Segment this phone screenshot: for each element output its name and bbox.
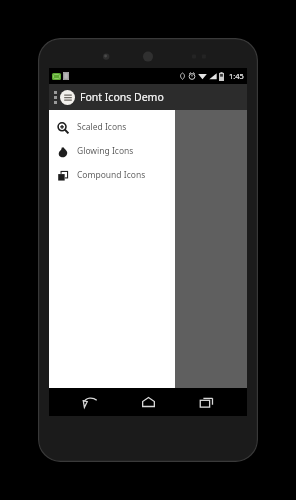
staticText: Compound Icons [77, 169, 146, 181]
staticText: 1:45 [229, 71, 244, 81]
staticText: Glowing Icons [77, 145, 134, 157]
button[interactable]: Recent apps [189, 388, 223, 416]
staticText: Scaled Icons [77, 121, 127, 133]
button[interactable]: Compound Icons [49, 163, 175, 187]
button[interactable]: Glowing Icons [49, 139, 175, 163]
button[interactable]: App icon [60, 90, 75, 105]
button[interactable]: More options [51, 84, 60, 110]
staticText: Font Icons Demo [80, 90, 164, 104]
button[interactable]: Home [131, 388, 165, 416]
button[interactable]: Scaled Icons [49, 115, 175, 139]
button[interactable]: Back [73, 388, 107, 416]
